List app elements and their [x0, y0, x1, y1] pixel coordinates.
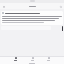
button[interactable]: Home: [13, 57, 18, 61]
button[interactable]: Search: [59, 5, 62, 8]
button[interactable]: Scroll position: [62, 26, 63, 31]
button[interactable]: Profile: [46, 57, 51, 61]
button[interactable]: Favorites: [30, 57, 35, 61]
button[interactable]: [1, 11, 63, 25]
button[interactable]: Menu: [2, 5, 5, 8]
